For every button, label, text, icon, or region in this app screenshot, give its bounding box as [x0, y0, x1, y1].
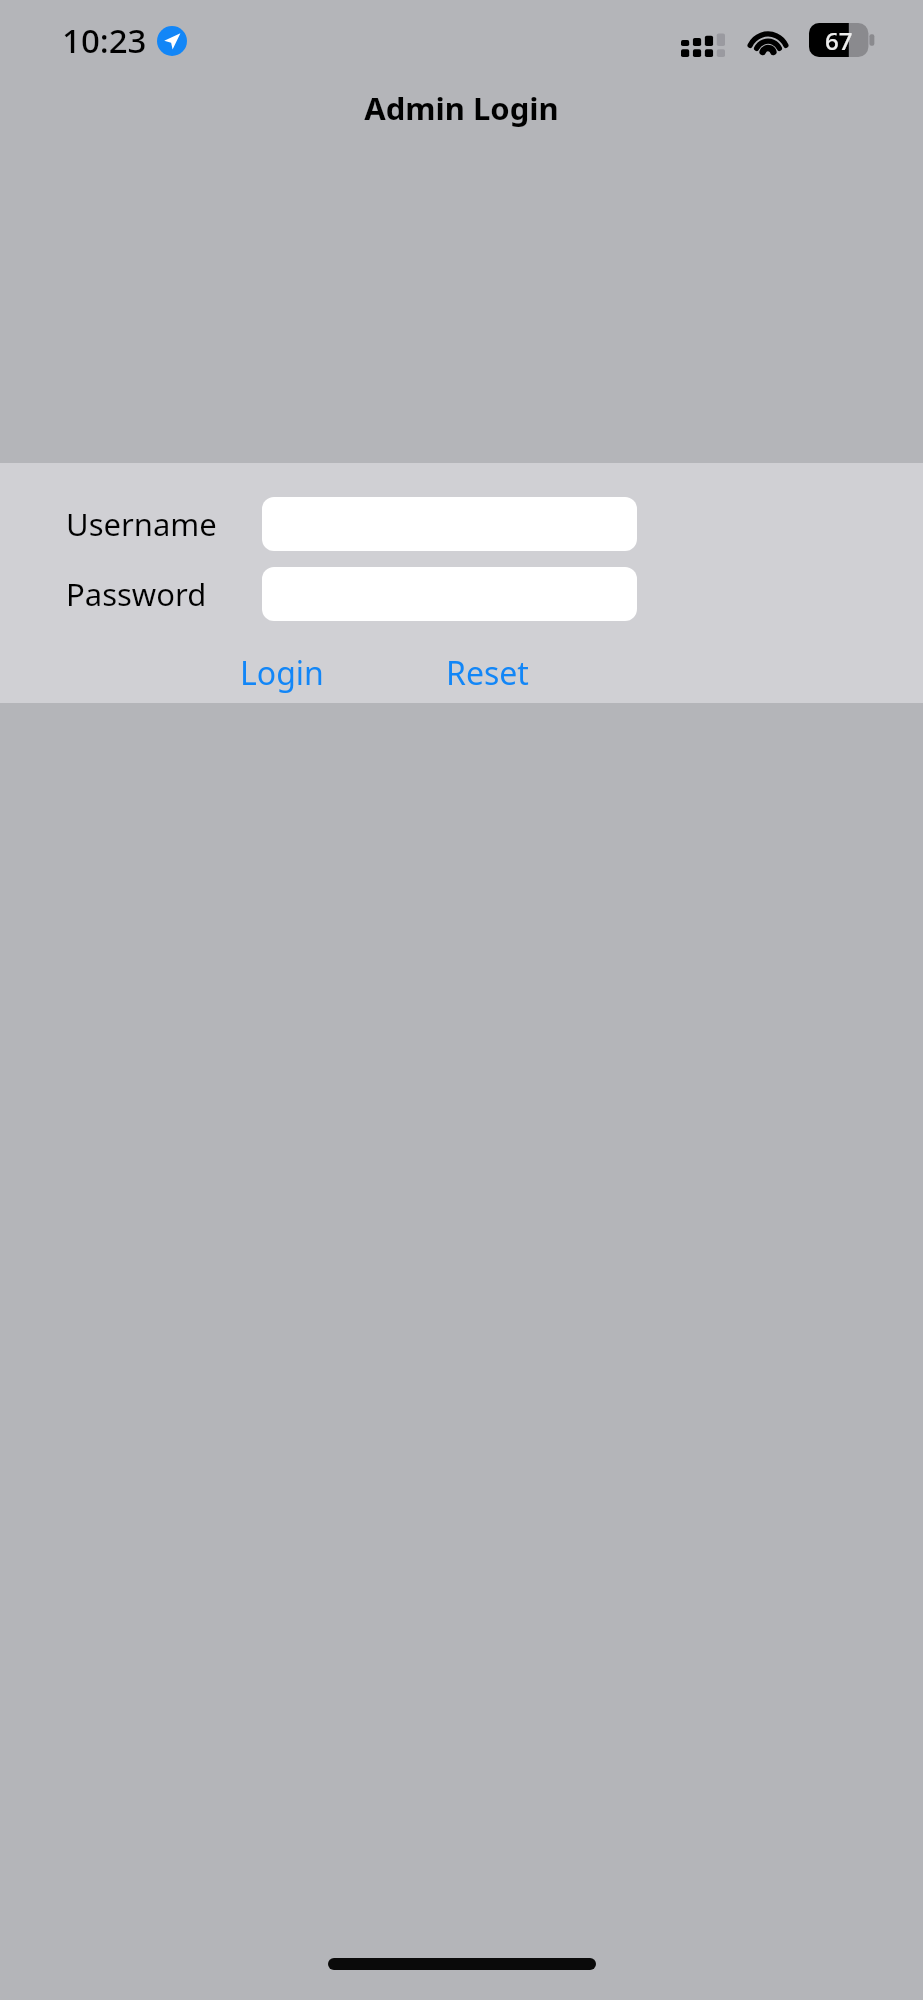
staticText: 67 [825, 24, 853, 57]
staticText: 10:23 [62, 18, 147, 63]
button[interactable]: Username [262, 497, 637, 551]
button[interactable]: Password [262, 567, 637, 621]
button[interactable]: Login [226, 645, 338, 701]
button[interactable]: Reset [432, 645, 543, 701]
staticText: Reset [446, 651, 529, 695]
staticText: Password [66, 573, 207, 615]
staticText: Login [240, 651, 324, 695]
staticText: Username [66, 503, 217, 545]
staticText: Admin Login [364, 87, 559, 129]
